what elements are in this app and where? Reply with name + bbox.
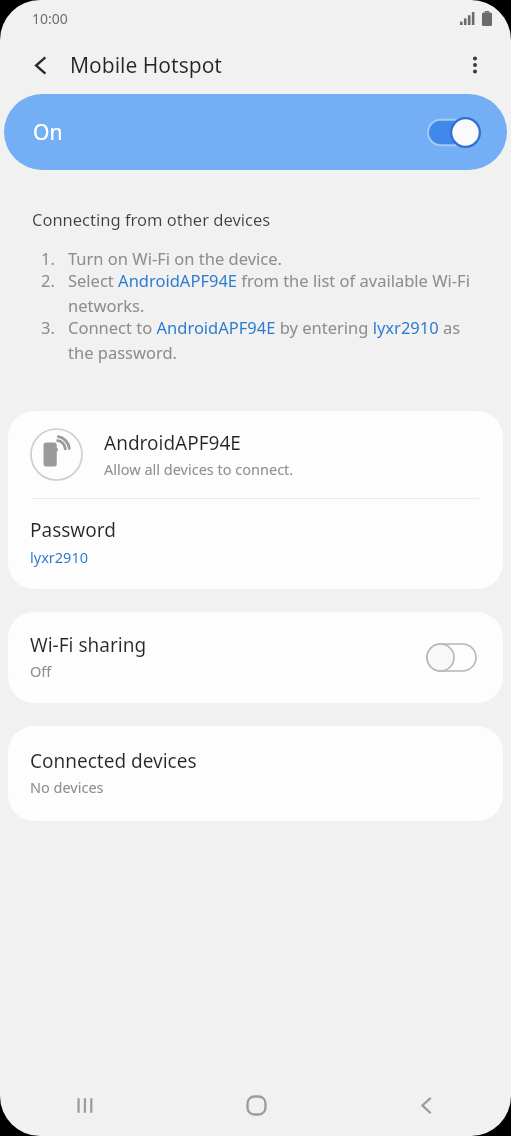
staticText: Connecting from other devices xyxy=(32,208,271,230)
staticText: Off xyxy=(30,661,52,681)
button[interactable]: Navigate up xyxy=(17,42,63,88)
staticText: 2. xyxy=(41,269,68,291)
button[interactable]: Connected devices xyxy=(8,726,503,821)
staticText: Select AndroidAPF94E from the list of av… xyxy=(68,269,479,316)
button[interactable]: Back xyxy=(341,1074,511,1136)
staticText: 1. xyxy=(41,247,68,269)
button[interactable]: AndroidAPF94E xyxy=(8,411,503,498)
staticText: Wi-Fi sharing xyxy=(30,632,147,658)
staticText: Connect to AndroidAPF94E by entering lyx… xyxy=(68,316,479,363)
staticText: No devices xyxy=(30,777,104,797)
staticText: AndroidAPF94E xyxy=(104,430,241,456)
staticText: Allow all devices to connect. xyxy=(104,459,294,479)
button[interactable]: Recent apps xyxy=(0,1074,171,1136)
staticText: Mobile Hotspot xyxy=(70,51,222,80)
staticText: On xyxy=(33,118,63,147)
button[interactable]: Wi-Fi sharing xyxy=(8,612,503,703)
staticText: Password xyxy=(30,517,116,543)
staticText: 3. xyxy=(41,316,68,338)
button[interactable]: Wi-Fi sharing toggle, off xyxy=(423,640,479,674)
button[interactable]: On xyxy=(4,94,507,170)
staticText: Turn on Wi-Fi on the device. xyxy=(68,247,282,269)
button[interactable]: Home xyxy=(171,1074,341,1136)
staticText: lyxr2910 xyxy=(30,547,88,567)
button[interactable]: More options xyxy=(452,42,498,88)
staticText: 10:00 xyxy=(32,9,68,28)
staticText: Connected devices xyxy=(30,748,197,774)
button[interactable]: Password xyxy=(8,499,503,589)
